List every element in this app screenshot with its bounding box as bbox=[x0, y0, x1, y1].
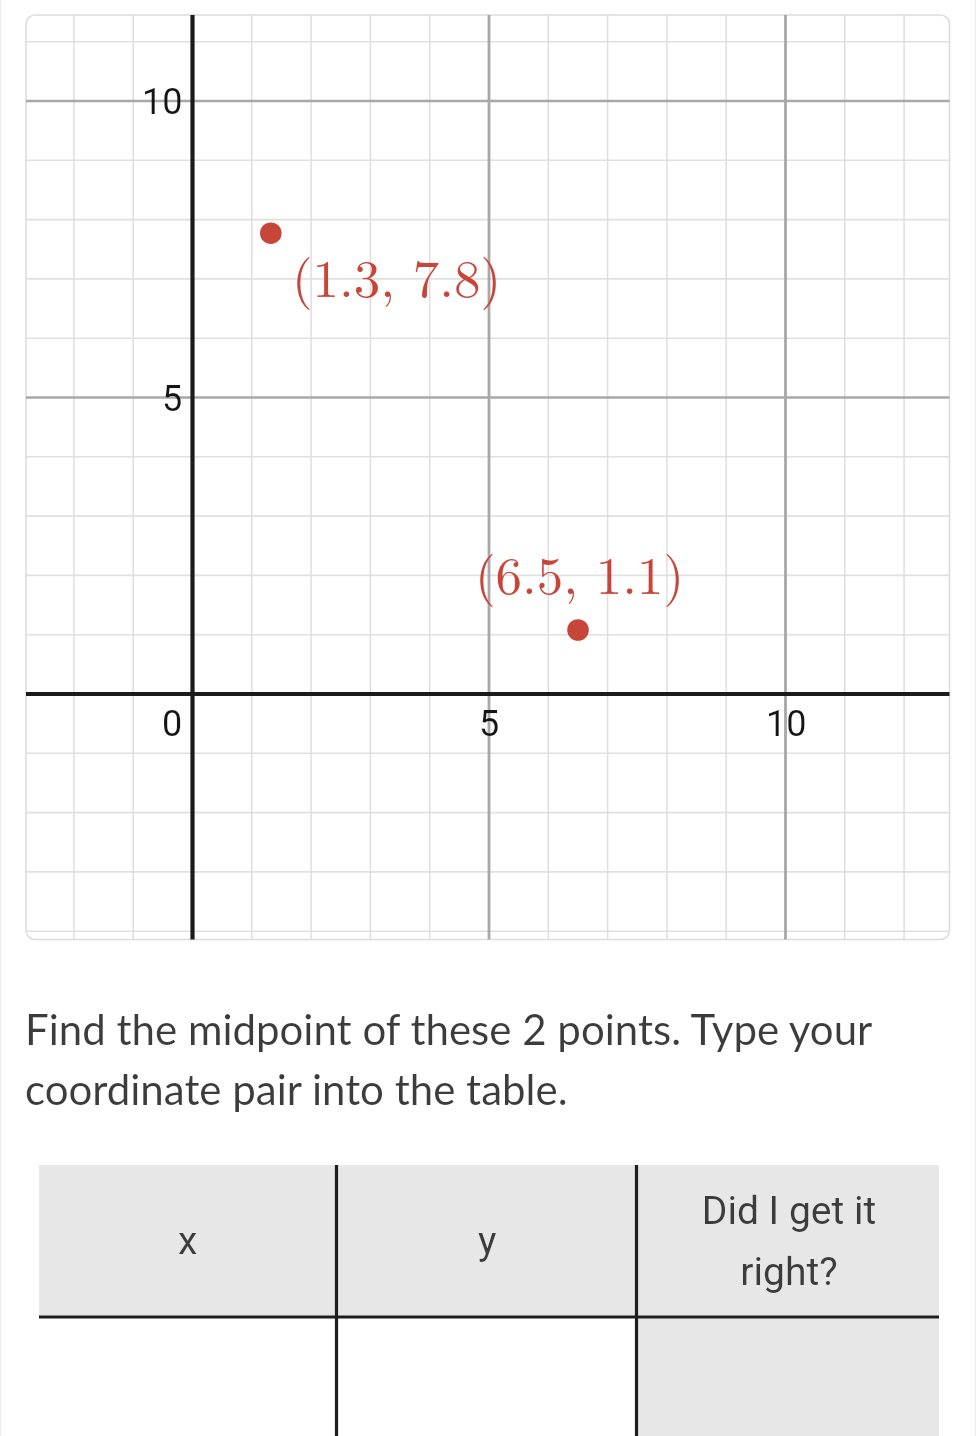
staticText: (6.5, 1.1) bbox=[475, 534, 685, 609]
staticText: 0 bbox=[162, 703, 183, 745]
staticText: x bbox=[178, 1218, 198, 1264]
staticText: 5 bbox=[479, 703, 500, 745]
button[interactable]: Enter x coordinate bbox=[39, 1317, 337, 1436]
staticText: y bbox=[478, 1218, 497, 1264]
staticText: Find the midpoint of these 2 points. Typ… bbox=[25, 1004, 907, 1114]
staticText: Did I get it right? bbox=[678, 1188, 900, 1294]
staticText: (1.3, 7.8) bbox=[292, 237, 502, 312]
button[interactable]: x bbox=[39, 1165, 337, 1317]
other: Coordinate grid plotting the points 1.3,… bbox=[26, 15, 950, 940]
staticText: 5 bbox=[162, 378, 183, 420]
staticText: 10 bbox=[766, 703, 807, 745]
button[interactable]: Check my answer bbox=[637, 1317, 940, 1436]
button[interactable]: Enter y coordinate bbox=[337, 1317, 637, 1436]
staticText: 10 bbox=[142, 81, 183, 123]
button[interactable]: Did I get it right? bbox=[637, 1165, 940, 1317]
button[interactable]: y bbox=[337, 1165, 637, 1317]
